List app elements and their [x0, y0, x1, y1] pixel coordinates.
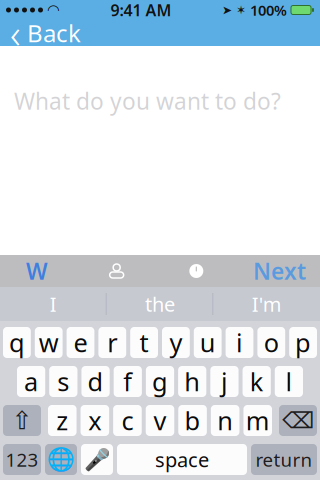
staticText: ◠	[47, 2, 60, 18]
staticText: x	[88, 404, 101, 437]
staticText: u	[200, 326, 216, 359]
staticText: m	[246, 404, 270, 437]
staticText: 🎤	[83, 447, 110, 472]
staticText: l	[285, 365, 292, 398]
button[interactable]: f	[114, 366, 142, 397]
button[interactable]: 123	[3, 444, 41, 475]
button[interactable]: l	[275, 366, 303, 397]
button[interactable]: i	[226, 327, 253, 358]
button[interactable]: I	[0, 287, 107, 321]
button[interactable]: ‹	[0, 20, 95, 46]
staticText: Next	[253, 256, 306, 286]
button[interactable]: W	[14, 255, 60, 287]
button[interactable]: Dictation	[81, 444, 113, 475]
staticText: 9:41 AM	[110, 0, 171, 21]
button[interactable]: space	[117, 444, 247, 475]
staticText: Back	[27, 17, 81, 49]
button[interactable]: Next keyboard	[45, 444, 77, 475]
button[interactable]: z	[48, 405, 77, 436]
staticText: r	[107, 326, 117, 359]
button[interactable]: Time	[173, 255, 219, 287]
staticText: I	[50, 291, 57, 317]
staticText: space	[155, 446, 209, 473]
staticText: z	[56, 404, 68, 437]
button[interactable]: b	[178, 405, 207, 436]
button[interactable]: m	[243, 405, 272, 436]
staticText: i	[236, 326, 243, 359]
button[interactable]: d	[81, 366, 110, 397]
button[interactable]: Shift	[3, 405, 41, 436]
button[interactable]: e	[67, 327, 94, 358]
staticText: g	[152, 365, 168, 398]
button[interactable]: u	[194, 327, 222, 358]
staticText: w	[39, 326, 59, 359]
button[interactable]: Delete	[279, 405, 317, 436]
button[interactable]: j	[210, 366, 238, 397]
button[interactable]: h	[178, 366, 206, 397]
staticText: o	[264, 326, 279, 359]
button[interactable]: w	[35, 327, 63, 358]
staticText: b	[185, 404, 201, 437]
button[interactable]: t	[130, 327, 158, 358]
staticText: ‹	[10, 6, 21, 59]
button[interactable]: s	[49, 366, 77, 397]
button[interactable]: return	[251, 444, 317, 475]
button[interactable]: n	[211, 405, 239, 436]
staticText: h	[184, 365, 200, 398]
staticText: ➤	[222, 3, 232, 17]
staticText: ✶	[236, 3, 246, 17]
button[interactable]: a	[17, 366, 45, 397]
staticText: return	[255, 447, 312, 472]
button[interactable]: Next	[253, 255, 320, 287]
button[interactable]: p	[289, 327, 317, 358]
button[interactable]: q	[3, 327, 31, 358]
staticText: ⌫	[282, 408, 314, 433]
staticText: j	[221, 365, 228, 398]
staticText: y	[169, 326, 182, 359]
staticText: t	[140, 326, 149, 359]
staticText: 123	[5, 447, 38, 472]
staticText: p	[295, 326, 311, 359]
staticText: What do you want to do?	[14, 86, 281, 116]
staticText: e	[73, 326, 87, 359]
staticText: v	[153, 404, 166, 437]
staticText: n	[217, 404, 233, 437]
staticText: d	[88, 365, 104, 398]
button[interactable]: Contacts	[94, 255, 140, 287]
button[interactable]: o	[257, 327, 285, 358]
staticText: a	[24, 365, 38, 398]
staticText: c	[121, 404, 133, 437]
button[interactable]: I'm	[213, 287, 320, 321]
staticText: 🌐	[47, 447, 75, 472]
button[interactable]: k	[243, 366, 271, 397]
staticText: q	[9, 326, 25, 359]
button[interactable]: g	[146, 366, 174, 397]
button[interactable]: v	[146, 405, 174, 436]
staticText: W	[26, 256, 48, 286]
staticText: I'm	[252, 291, 282, 317]
button[interactable]: y	[162, 327, 190, 358]
button[interactable]: c	[113, 405, 142, 436]
staticText: 100%	[250, 0, 287, 20]
button[interactable]: the	[107, 287, 213, 321]
staticText: s	[57, 365, 69, 398]
button[interactable]: r	[98, 327, 126, 358]
staticText: f	[123, 365, 132, 398]
staticText: the	[145, 291, 175, 317]
button[interactable]: x	[81, 405, 109, 436]
staticText: ⇧	[11, 406, 32, 435]
staticText: k	[250, 365, 264, 398]
